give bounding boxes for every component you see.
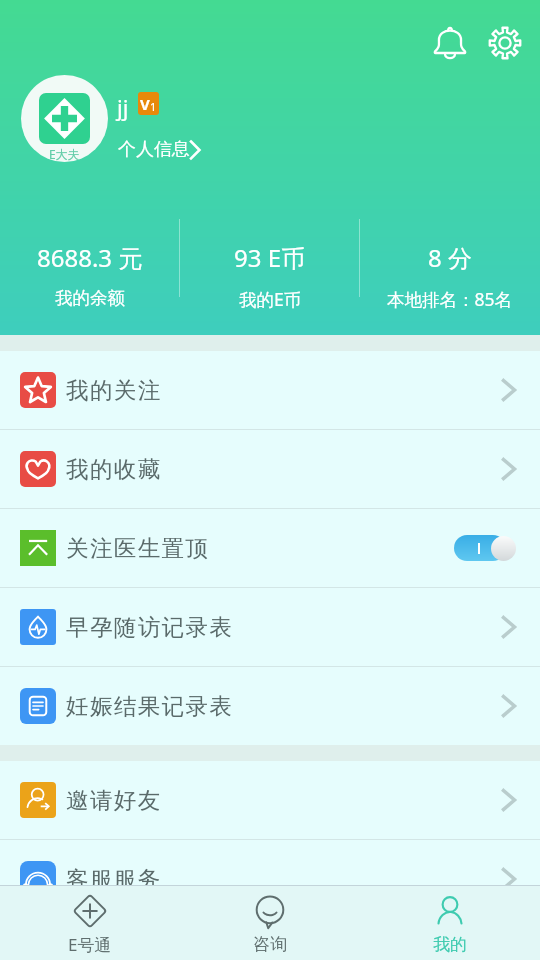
button[interactable]: 咨询	[180, 886, 360, 960]
button[interactable]: 用户头像	[21, 75, 108, 162]
button[interactable]: 关注医生置顶	[0, 509, 540, 587]
staticText: 早孕随访记录表	[66, 613, 234, 641]
button[interactable]: 我的收藏	[0, 430, 540, 508]
staticText: 本地排名：85名	[387, 287, 513, 311]
button[interactable]: 设置	[483, 21, 527, 65]
staticText: 客服服务	[66, 865, 162, 885]
staticText: 8 分	[428, 241, 472, 274]
staticText: 我的	[433, 934, 467, 955]
button[interactable]: 关注医生置顶开关	[454, 535, 516, 561]
staticText: 93 E币	[234, 241, 306, 274]
button[interactable]: 早孕随访记录表	[0, 588, 540, 666]
button[interactable]: 我的	[360, 886, 540, 960]
staticText: E大夫	[49, 146, 80, 162]
staticText: 妊娠结果记录表	[66, 692, 234, 720]
staticText: jj	[117, 92, 129, 122]
button[interactable]: E号通	[0, 886, 180, 960]
staticText: 我的E币	[239, 287, 302, 311]
staticText: 我的关注	[66, 376, 162, 404]
button[interactable]: 客服服务	[0, 840, 540, 885]
staticText: 8688.3 元	[37, 241, 143, 274]
button[interactable]: 消息通知	[428, 21, 472, 65]
button[interactable]: 个人信息	[118, 138, 202, 161]
staticText: 关注医生置顶	[66, 534, 210, 562]
staticText: E号通	[68, 933, 112, 956]
staticText: 个人信息	[118, 138, 190, 161]
staticText: 邀请好友	[66, 786, 162, 814]
staticText: V	[140, 94, 150, 114]
button[interactable]: 邀请好友	[0, 761, 540, 839]
staticText: 我的收藏	[66, 455, 162, 483]
button[interactable]: 妊娠结果记录表	[0, 667, 540, 745]
staticText: 1	[150, 99, 157, 114]
button[interactable]: 我的关注	[0, 351, 540, 429]
staticText: 我的余额	[55, 287, 125, 309]
staticText: 咨询	[253, 934, 287, 955]
